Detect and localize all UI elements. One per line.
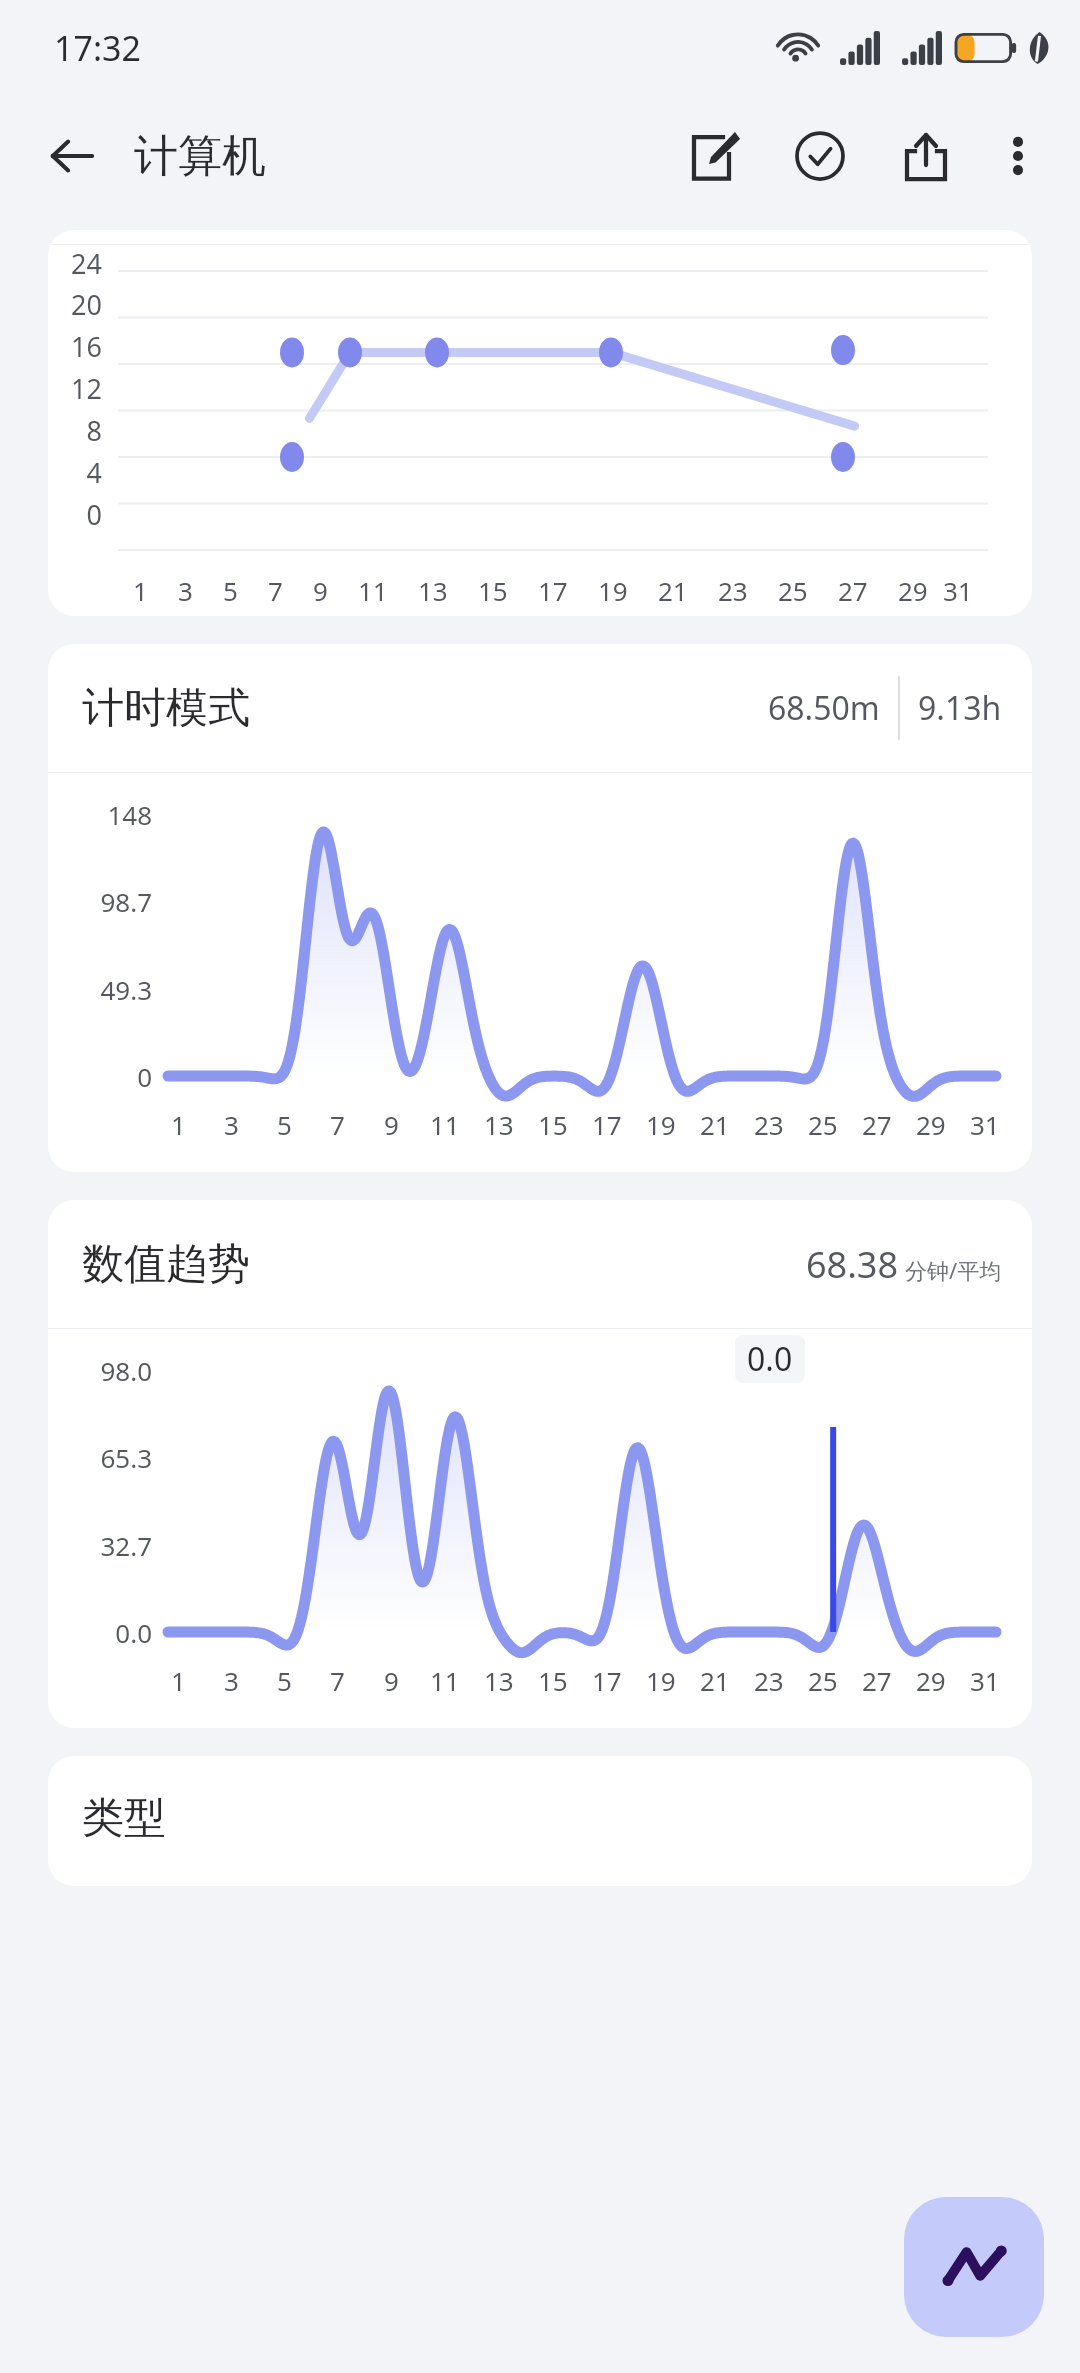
staticText: 5 [223, 573, 238, 608]
staticText: 31 [943, 573, 973, 608]
button[interactable]: Back [30, 114, 114, 198]
staticText: 98.7 [48, 884, 152, 919]
staticText: 8 [48, 412, 102, 449]
staticText: 27 [838, 573, 868, 608]
button[interactable]: 24 [48, 230, 1032, 616]
staticText: 25 [778, 573, 808, 608]
staticText: 分钟/平均 [905, 1255, 1002, 1285]
button[interactable]: Confirm [778, 114, 862, 198]
staticText: 3 [224, 1107, 239, 1142]
staticText: 9 [384, 1107, 399, 1142]
button[interactable]: 计时模式 [48, 644, 1032, 1172]
staticText: 9 [384, 1663, 399, 1698]
staticText: 7 [330, 1107, 345, 1142]
staticText: 9 [313, 573, 328, 608]
staticText: 11 [430, 1107, 460, 1142]
staticText: 1 [133, 573, 148, 608]
staticText: 29 [916, 1107, 946, 1142]
staticText: 17 [592, 1663, 622, 1698]
staticText: 数值趋势 [82, 1238, 250, 1291]
staticText: 32.7 [48, 1528, 152, 1563]
staticText: 16 [48, 328, 102, 365]
staticText: 计时模式 [82, 682, 250, 735]
staticText: 17:32 [54, 25, 141, 71]
staticText: 4 [48, 454, 102, 491]
staticText: 29 [916, 1663, 946, 1698]
staticText: 17 [592, 1107, 622, 1142]
staticText: 13 [484, 1107, 514, 1142]
button[interactable]: More options [978, 116, 1058, 196]
staticText: 7 [330, 1663, 345, 1698]
staticText: 15 [538, 1107, 568, 1142]
staticText: 1 [171, 1663, 186, 1698]
staticText: 20 [48, 286, 102, 323]
staticText: 19 [598, 573, 628, 608]
staticText: 12 [48, 370, 102, 407]
staticText: 13 [484, 1663, 514, 1698]
staticText: 7 [268, 573, 283, 608]
staticText: 148 [48, 797, 152, 832]
staticText: 15 [538, 1663, 568, 1698]
staticText: 21 [700, 1663, 730, 1698]
staticText: 3 [178, 573, 193, 608]
staticText: 29 [898, 573, 928, 608]
button[interactable]: 数值趋势 [48, 1200, 1032, 1728]
staticText: 25 [808, 1663, 838, 1698]
staticText: 11 [358, 573, 388, 608]
staticText: 24 [48, 245, 102, 282]
staticText: 3 [224, 1663, 239, 1698]
staticText: 23 [754, 1107, 784, 1142]
staticText: 27 [862, 1663, 892, 1698]
staticText: 0 [48, 1059, 152, 1094]
button[interactable]: Edit [672, 114, 756, 198]
staticText: 68.50m [768, 686, 880, 730]
staticText: 0.0 [747, 1337, 793, 1381]
staticText: 98.0 [48, 1353, 152, 1388]
staticText: 23 [718, 573, 748, 608]
button[interactable]: Chart [904, 2197, 1044, 2337]
staticText: 9.13h [918, 686, 1002, 730]
button[interactable]: Share [884, 114, 968, 198]
staticText: 21 [700, 1107, 730, 1142]
staticText: 类型 [82, 1792, 166, 1845]
staticText: 13 [418, 573, 448, 608]
staticText: 31 [970, 1663, 1000, 1698]
staticText: 15 [478, 573, 508, 608]
staticText: 19 [646, 1107, 676, 1142]
staticText: 31 [970, 1107, 1000, 1142]
staticText: 65.3 [48, 1440, 152, 1475]
button[interactable]: 类型 [48, 1756, 1032, 1886]
staticText: 25 [808, 1107, 838, 1142]
staticText: 5 [277, 1663, 292, 1698]
staticText: 19 [646, 1663, 676, 1698]
staticText: 23 [754, 1663, 784, 1698]
staticText: 11 [430, 1663, 460, 1698]
staticText: 0 [48, 496, 102, 533]
staticText: 21 [658, 573, 688, 608]
staticText: 49.3 [48, 972, 152, 1007]
staticText: 计算机 [134, 129, 266, 184]
staticText: 5 [277, 1107, 292, 1142]
staticText: 68.38 [806, 1240, 899, 1289]
staticText: 17 [538, 573, 568, 608]
staticText: 27 [862, 1107, 892, 1142]
staticText: 0.0 [48, 1615, 152, 1650]
staticText: 1 [171, 1107, 186, 1142]
